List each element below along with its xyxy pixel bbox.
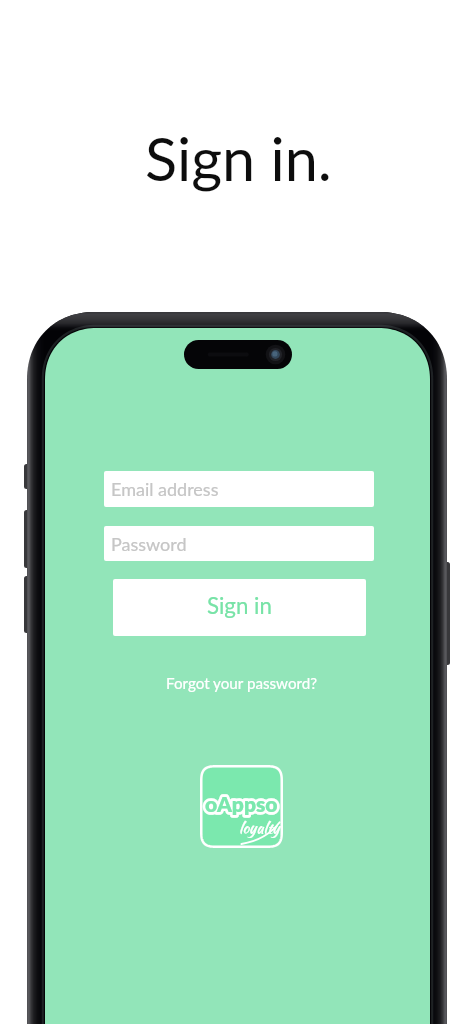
staticText: Forgot your password? bbox=[166, 674, 318, 692]
button[interactable]: oAppso loyalty logo bbox=[200, 765, 283, 848]
button[interactable]: Email address bbox=[104, 471, 374, 507]
button[interactable]: Sign in bbox=[113, 579, 366, 636]
staticText: Password bbox=[111, 533, 187, 555]
staticText: oAppso bbox=[205, 791, 278, 816]
button[interactable]: Forgot your password? bbox=[161, 669, 323, 697]
staticText: oAppso bbox=[205, 791, 278, 816]
staticText: Sign in bbox=[207, 592, 272, 619]
button[interactable]: Password bbox=[104, 526, 374, 561]
staticText: Sign in. bbox=[145, 122, 332, 193]
staticText: loyalty bbox=[239, 817, 280, 839]
staticText: Email address bbox=[111, 478, 219, 500]
